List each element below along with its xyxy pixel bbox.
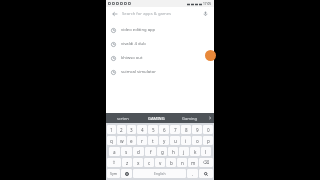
button[interactable]: GAMING (140, 113, 173, 123)
staticText: English (154, 171, 166, 176)
button[interactable]: r (137, 136, 147, 145)
staticText: f (150, 149, 152, 155)
staticText: g (161, 149, 164, 155)
staticText: . (192, 171, 194, 177)
staticText: 4 (141, 127, 144, 133)
button[interactable]: 1 (107, 125, 116, 134)
button[interactable]: Settings (121, 169, 132, 178)
button[interactable]: x (133, 158, 143, 167)
staticText: t (152, 138, 154, 144)
button[interactable]: khiwso out (106, 51, 214, 65)
button[interactable]: c (144, 158, 154, 167)
staticText: 6 (163, 127, 166, 133)
staticText: p (207, 138, 210, 144)
staticText: j (183, 149, 185, 155)
staticText: khiwso out (121, 55, 143, 61)
staticText: d (137, 149, 140, 155)
staticText: v (159, 160, 162, 166)
button[interactable]: suimcal simulator (106, 65, 214, 79)
button[interactable]: p (203, 136, 213, 145)
button[interactable]: z (122, 158, 132, 167)
button[interactable]: 0 (203, 125, 213, 134)
staticText: 7 (174, 127, 177, 133)
button[interactable]: t (148, 136, 158, 145)
button[interactable]: y (159, 136, 169, 145)
button[interactable]: ⌫ (199, 158, 213, 167)
button[interactable]: o (192, 136, 202, 145)
button[interactable]: 8 (181, 125, 191, 134)
button[interactable]: l (201, 147, 211, 156)
button[interactable]: u (170, 136, 180, 145)
button[interactable]: q (107, 136, 116, 145)
button[interactable]: v (155, 158, 165, 167)
staticText: 8 (185, 127, 188, 133)
button[interactable]: j (179, 147, 189, 156)
button[interactable]: Back (106, 7, 214, 20)
staticText: Search for apps & games (122, 11, 172, 17)
button[interactable]: vivaldi 4 dub (106, 37, 214, 51)
button[interactable]: f (145, 147, 156, 156)
button[interactable]: 9 (192, 125, 202, 134)
button[interactable]: 5 (148, 125, 158, 134)
staticText: c (148, 160, 151, 166)
button[interactable]: More suggestions (206, 113, 214, 123)
staticText: 9 (196, 127, 199, 133)
button[interactable]: n (177, 158, 187, 167)
button[interactable]: e (127, 136, 136, 145)
button[interactable]: Sym (107, 169, 120, 178)
button[interactable]: 4 (137, 125, 147, 134)
button[interactable]: Back (110, 9, 119, 18)
staticText: k (194, 149, 197, 155)
button[interactable]: scrten (106, 113, 140, 123)
staticText: o (196, 138, 199, 144)
button[interactable]: English (133, 169, 186, 178)
staticText: suimcal simulator (121, 69, 156, 75)
staticText: 1 (110, 127, 113, 133)
staticText: GAMING (148, 116, 165, 121)
staticText: l (205, 149, 207, 155)
staticText: x (137, 160, 140, 166)
button[interactable]: video editing app (106, 23, 214, 37)
staticText: e (130, 138, 133, 144)
staticText: 3 (130, 127, 133, 133)
button[interactable]: w (117, 136, 126, 145)
staticText: w (120, 138, 124, 144)
staticText: a (113, 149, 116, 155)
staticText: Sym (110, 171, 118, 176)
button[interactable]: 7 (170, 125, 180, 134)
staticText: m (191, 160, 196, 166)
button[interactable]: 3 (127, 125, 136, 134)
staticText: 17:05 (203, 2, 212, 6)
staticText: Gaming (182, 116, 197, 121)
button[interactable]: Voice search (201, 9, 210, 18)
staticText: 0 (207, 127, 210, 133)
staticText: vivaldi 4 dub (121, 41, 146, 47)
staticText: q (110, 138, 113, 144)
button[interactable]: Gaming (173, 113, 206, 123)
staticText: ⇧ (112, 160, 116, 165)
button[interactable]: 6 (159, 125, 169, 134)
button[interactable]: g (157, 147, 167, 156)
button[interactable]: i (181, 136, 191, 145)
staticText: i (185, 138, 187, 144)
button[interactable]: 2 (117, 125, 126, 134)
button[interactable]: m (188, 158, 198, 167)
button[interactable]: d (133, 147, 144, 156)
staticText: h (172, 149, 175, 155)
staticText: r (141, 138, 143, 144)
staticText: y (163, 138, 166, 144)
button[interactable]: s (121, 147, 132, 156)
button[interactable]: Search (199, 169, 213, 178)
staticText: 5 (152, 127, 155, 133)
staticText: n (181, 160, 184, 166)
staticText: video editing app (121, 27, 156, 33)
button[interactable]: k (190, 147, 200, 156)
button[interactable]: . (187, 169, 198, 178)
button[interactable]: h (168, 147, 178, 156)
button[interactable]: ⇧ (107, 158, 121, 167)
button[interactable]: a (109, 147, 120, 156)
button[interactable]: b (166, 158, 176, 167)
staticText: ⌫ (203, 160, 210, 165)
staticText: u (174, 138, 177, 144)
staticText: 2 (120, 127, 123, 133)
